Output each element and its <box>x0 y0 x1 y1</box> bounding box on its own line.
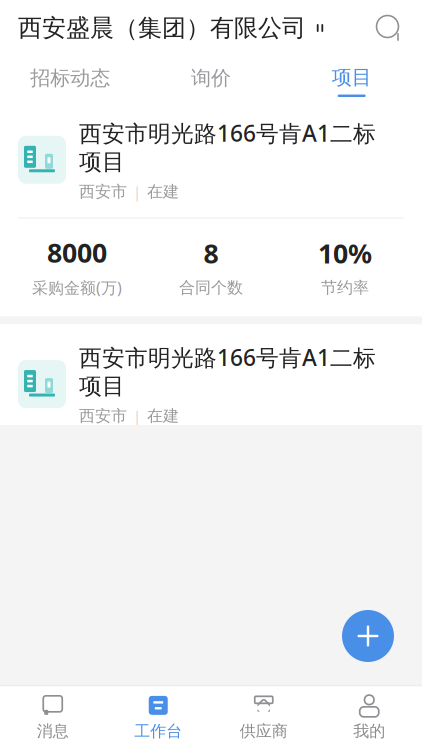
staticText: 节约率 <box>321 278 369 297</box>
staticText: 采购金额(万) <box>32 277 122 298</box>
button[interactable]: 我的 <box>316 686 422 750</box>
button[interactable]: 西安市明光路166号肯A1二标项目 <box>0 324 422 541</box>
staticText: 西安市明光路166号肯A1二标项目 <box>79 342 376 400</box>
staticText: 西安盛晨（集团）有限公司 <box>18 13 306 43</box>
staticText: 西安市明光路166号肯A1二标项目 <box>79 118 376 176</box>
staticText: | <box>133 182 141 201</box>
button[interactable]: 消息 <box>0 686 105 750</box>
staticText: | <box>133 406 141 426</box>
staticText: 合同个数 <box>179 278 243 297</box>
staticText: 西安市 <box>79 406 127 426</box>
staticText: 供应商 <box>240 721 288 741</box>
button[interactable]: 供应商 <box>211 686 316 750</box>
staticText: 10% <box>318 235 372 271</box>
staticText: 招标动态 <box>30 66 110 90</box>
button[interactable]: 西安盛晨（集团）有限公司 <box>18 13 327 43</box>
button[interactable]: Search <box>374 13 404 43</box>
button[interactable]: 招标动态 <box>0 55 141 101</box>
staticText: 我的 <box>353 721 385 741</box>
staticText: 8000 <box>47 235 107 270</box>
staticText: 在建 <box>147 406 179 426</box>
staticText: 询价 <box>191 66 231 90</box>
staticText: 工作台 <box>134 721 182 741</box>
staticText: 消息 <box>37 721 69 741</box>
staticText: 在建 <box>147 182 179 202</box>
staticText: 8 <box>203 235 218 271</box>
button[interactable]: Add <box>342 610 394 662</box>
staticText: 西安市 <box>79 182 127 202</box>
button[interactable]: 工作台 <box>105 686 211 750</box>
button[interactable]: 西安市明光路166号肯A1二标项目 <box>0 100 422 316</box>
button[interactable]: 项目 <box>281 54 422 102</box>
staticText: 项目 <box>332 65 372 90</box>
button[interactable]: 询价 <box>141 55 281 101</box>
